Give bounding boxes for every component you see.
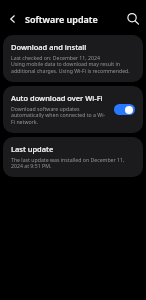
button[interactable]: Auto download over Wi-Fi: [3, 86, 143, 133]
staticText: The last update was installed on Decembe…: [11, 156, 135, 170]
button[interactable]: Download and install: [3, 35, 143, 82]
staticText: Auto download over Wi-Fi: [11, 93, 103, 103]
staticText: Download software updates automatically …: [11, 105, 108, 126]
button[interactable]: Auto download over Wi-Fi toggle: [114, 104, 135, 115]
button[interactable]: Last update: [3, 137, 143, 177]
staticText: Last checked on: December 11, 2024 Using…: [11, 54, 135, 75]
staticText: Download and install: [11, 42, 87, 52]
staticText: Software update: [25, 13, 98, 25]
button[interactable]: Back: [5, 11, 21, 27]
button[interactable]: Search: [125, 11, 141, 27]
staticText: Last update: [11, 144, 54, 154]
